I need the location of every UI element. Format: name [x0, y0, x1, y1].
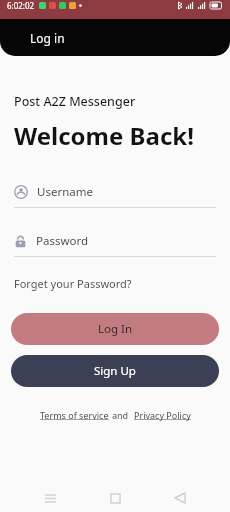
button[interactable]: Log In	[11, 313, 219, 345]
button[interactable]: Privacy Policy	[134, 409, 191, 421]
staticText: Welcome Back!	[14, 119, 194, 152]
staticText: Sign Up	[94, 363, 136, 379]
button[interactable]: Terms of service	[40, 409, 109, 421]
button[interactable]: Recent apps	[35, 484, 65, 512]
staticText: Forget your Password?	[14, 276, 132, 291]
button[interactable]: Home	[100, 484, 130, 512]
staticText: and	[112, 409, 129, 421]
button[interactable]: Back	[165, 484, 195, 512]
button[interactable]: Sign Up	[11, 355, 219, 387]
staticText: 6:02:02	[7, 0, 35, 11]
button[interactable]: Username	[14, 184, 216, 208]
staticText: Post A2Z Messenger	[14, 93, 136, 110]
staticText: Log In	[98, 321, 133, 337]
staticText: Log in	[30, 30, 65, 46]
staticText: Terms of service	[40, 409, 109, 421]
staticText: Privacy Policy	[134, 409, 191, 421]
staticText: Password	[36, 233, 89, 249]
staticText: Username	[37, 184, 93, 200]
button[interactable]: Forget your Password?	[14, 276, 216, 291]
button[interactable]: Log in	[30, 30, 65, 46]
button[interactable]: Password	[14, 233, 216, 257]
